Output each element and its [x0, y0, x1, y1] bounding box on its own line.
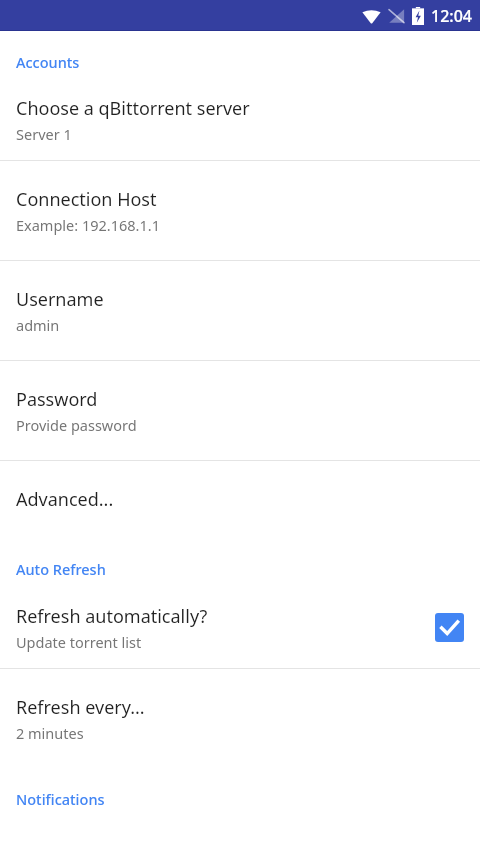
- button[interactable]: Password: [0, 361, 480, 460]
- button[interactable]: Advanced...: [0, 461, 480, 538]
- button[interactable]: Username: [0, 261, 480, 360]
- staticText: Connection Host: [16, 187, 157, 212]
- staticText: Provide password: [16, 415, 137, 435]
- staticText: Server 1: [16, 124, 72, 144]
- button[interactable]: Choose a qBittorrent server: [0, 80, 480, 160]
- staticText: Advanced...: [16, 487, 114, 512]
- staticText: Choose a qBittorrent server: [16, 96, 250, 121]
- staticText: Notifications: [16, 789, 105, 809]
- button[interactable]: Connection Host: [0, 161, 480, 260]
- button[interactable]: Refresh every...: [0, 669, 480, 768]
- button[interactable]: Refresh automatically?: [0, 587, 480, 668]
- staticText: Example: 192.168.1.1: [16, 215, 160, 235]
- staticText: Refresh automatically?: [16, 604, 208, 629]
- staticText: Refresh every...: [16, 695, 145, 720]
- staticText: Accounts: [16, 52, 80, 72]
- button[interactable]: Refresh automatically toggle: [435, 613, 464, 642]
- staticText: Auto Refresh: [16, 559, 106, 579]
- staticText: 2 minutes: [16, 723, 84, 743]
- staticText: Username: [16, 287, 104, 312]
- staticText: admin: [16, 315, 60, 335]
- staticText: Password: [16, 387, 98, 412]
- staticText: Update torrent list: [16, 632, 142, 652]
- staticText: 12:04: [431, 5, 472, 27]
